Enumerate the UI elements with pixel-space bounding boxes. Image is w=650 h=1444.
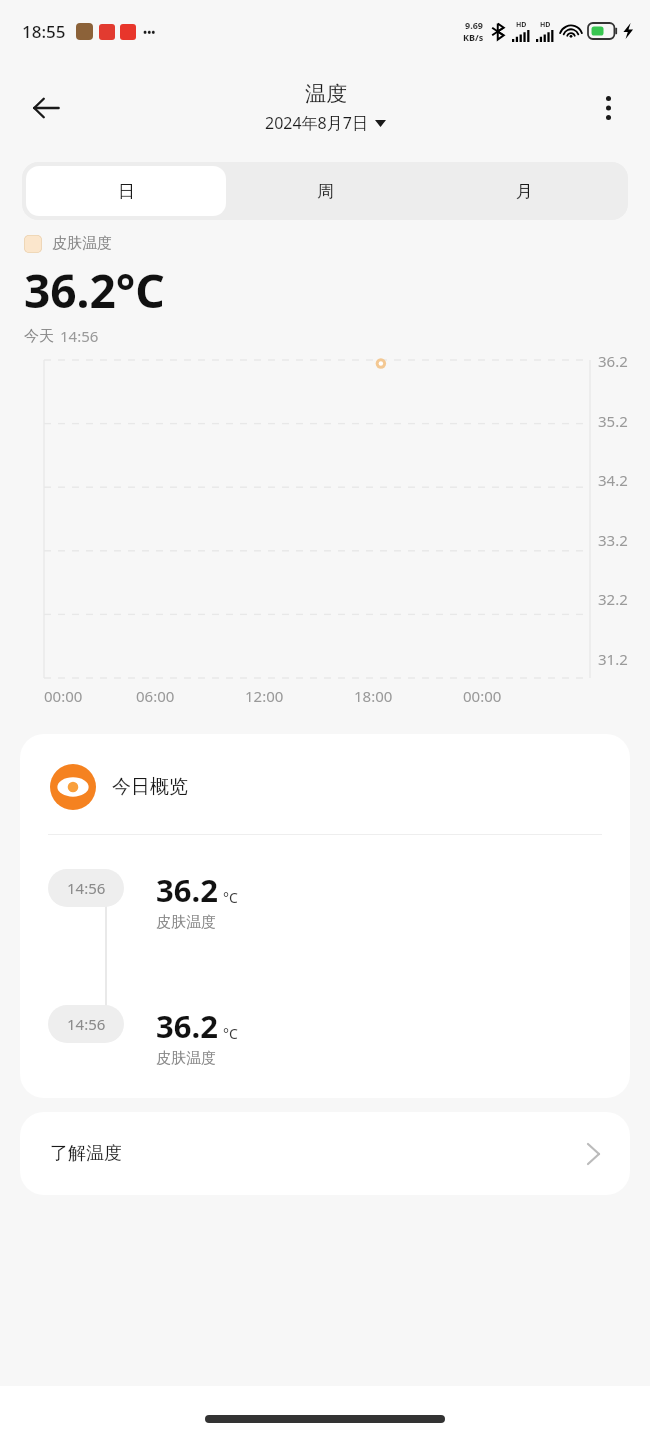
staticText: 34.2	[598, 470, 628, 490]
staticText: HD	[516, 20, 527, 30]
staticText: 9.69	[465, 19, 483, 31]
staticText: °C	[223, 888, 238, 907]
staticText: 月	[516, 181, 533, 202]
staticText: 00:00	[44, 686, 83, 706]
button[interactable]: 日	[26, 166, 226, 216]
button[interactable]: More options	[582, 82, 634, 134]
staticText: °C	[223, 1024, 238, 1043]
staticText: 35.2	[598, 411, 628, 431]
staticText: 14:56	[60, 326, 99, 346]
staticText: 06:00	[136, 686, 175, 706]
staticText: 皮肤温度	[156, 913, 216, 932]
staticText: 12:00	[245, 686, 284, 706]
staticText: 14:56	[67, 878, 106, 898]
staticText: 了解温度	[50, 1142, 122, 1165]
staticText: HD	[540, 20, 551, 30]
staticText: 32.2	[598, 589, 628, 609]
button[interactable]: 2024年8月7日	[261, 110, 390, 136]
staticText: 18:00	[354, 686, 393, 706]
staticText: •••	[143, 24, 156, 39]
staticText: 温度	[305, 81, 347, 107]
button[interactable]: 14:56	[20, 1003, 630, 1068]
button[interactable]: 了解温度	[20, 1112, 630, 1195]
staticText: 33.2	[598, 530, 628, 550]
staticText: 日	[118, 181, 135, 202]
button[interactable]: 周	[226, 166, 425, 216]
staticText: 36.2	[156, 1005, 218, 1047]
button[interactable]: 月	[425, 166, 624, 216]
staticText: 31.2	[598, 649, 628, 669]
staticText: 今天	[24, 327, 54, 346]
staticText: 周	[317, 181, 334, 202]
button[interactable]: 14:56	[20, 867, 630, 1003]
staticText: 36.2°C	[24, 259, 165, 322]
staticText: KB/s	[463, 31, 484, 43]
staticText: 2024年8月7日	[265, 112, 368, 134]
staticText: 皮肤温度	[52, 234, 112, 253]
staticText: 14:56	[67, 1014, 106, 1034]
button[interactable]: Back	[18, 80, 74, 136]
staticText: 36.2	[598, 351, 628, 371]
staticText: 皮肤温度	[156, 1049, 216, 1068]
staticText: 00:00	[463, 686, 502, 706]
staticText: 18:55	[22, 20, 66, 43]
staticText: 今日概览	[112, 775, 188, 799]
staticText: 36.2	[156, 869, 218, 911]
button[interactable]: 今日概览	[50, 764, 630, 810]
